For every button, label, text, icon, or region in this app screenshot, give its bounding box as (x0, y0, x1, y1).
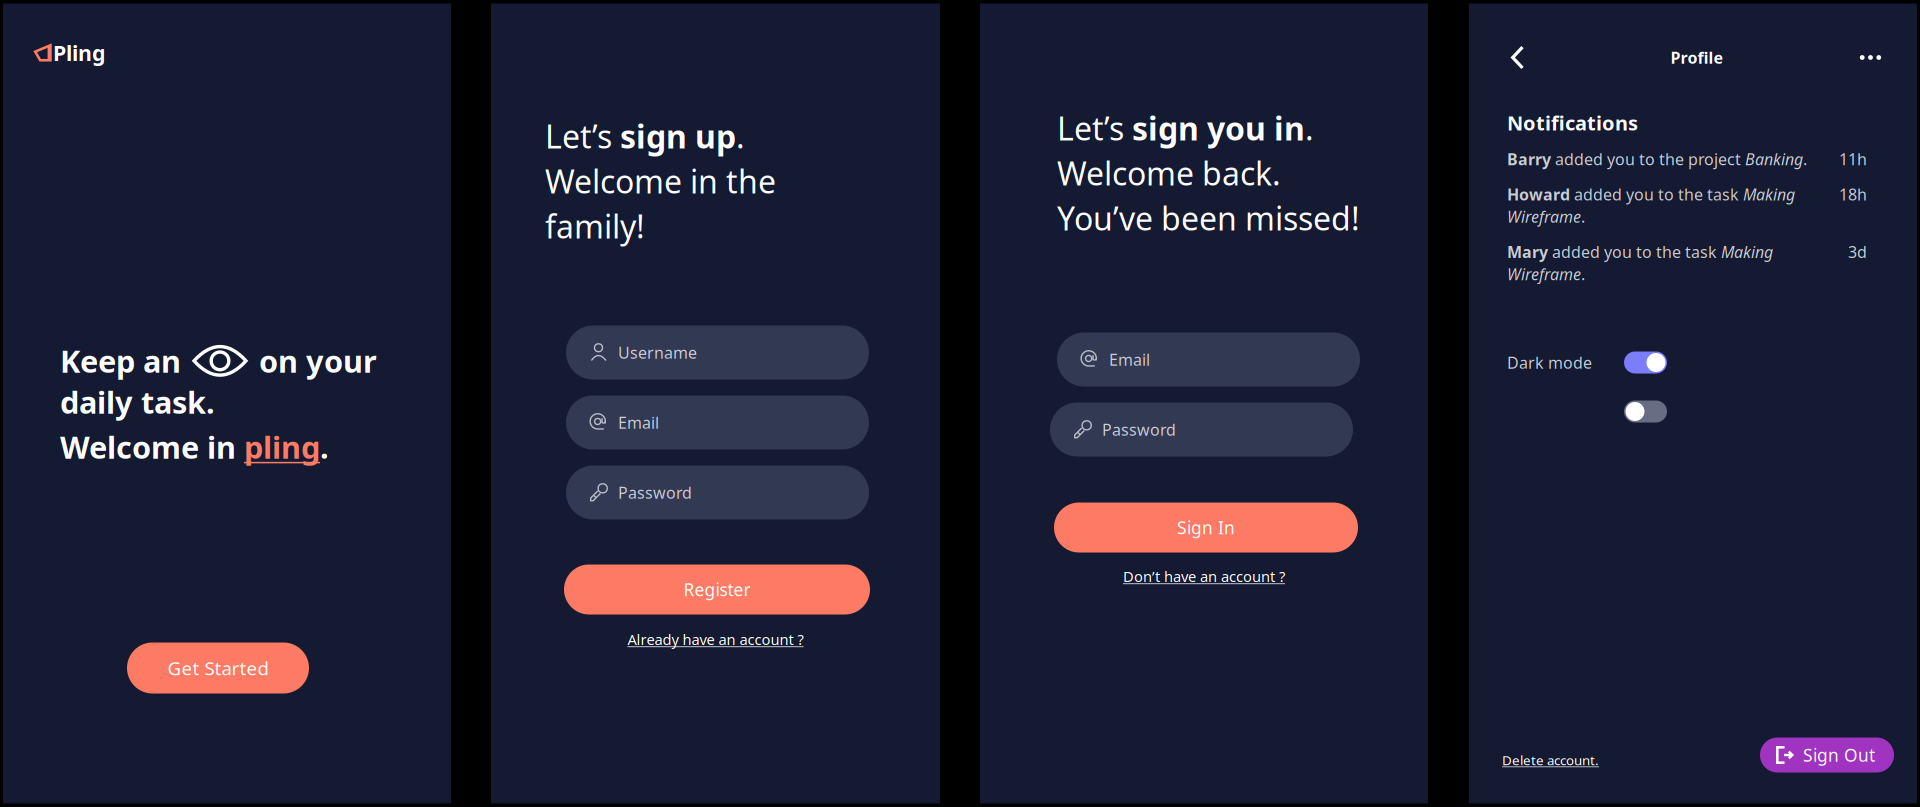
button[interactable]: Register (564, 564, 870, 614)
staticText: Welcome in (60, 426, 244, 467)
staticText: . (736, 115, 745, 157)
button[interactable]: Back (1503, 39, 1532, 75)
staticText: Email (1109, 349, 1150, 370)
staticText: sign up (620, 115, 736, 157)
button[interactable]: Already have an account ? (627, 627, 803, 651)
staticText: family! (545, 205, 645, 247)
staticText: on your (259, 340, 377, 381)
staticText: Register (683, 578, 750, 601)
staticText: Username (618, 342, 697, 363)
staticText: Welcome in the (545, 160, 776, 202)
staticText: Email (618, 412, 659, 433)
staticText: 11h (1839, 148, 1867, 170)
staticText: 3d (1848, 241, 1867, 262)
staticText: . (1305, 107, 1314, 149)
button[interactable]: Sign In (1054, 502, 1358, 552)
staticText: pling (244, 426, 320, 467)
staticText: daily task. (60, 381, 215, 422)
staticText: Profile (1670, 47, 1723, 68)
staticText: You’ve been missed! (1057, 197, 1360, 239)
button[interactable]: Don’t have an account ? (1123, 564, 1285, 588)
staticText: sign you in (1132, 107, 1305, 149)
staticText: Let’s (545, 115, 620, 157)
staticText: Password (1102, 419, 1176, 440)
button[interactable]: Sign Out (1760, 737, 1894, 772)
button[interactable]: Password (1050, 402, 1353, 456)
staticText: Barry added you to the project Banking. (1507, 148, 1807, 170)
staticText: Let’s (1057, 107, 1132, 149)
staticText: Delete account. (1502, 751, 1599, 769)
staticText: Sign In (1177, 516, 1235, 539)
button[interactable]: Email (566, 395, 869, 449)
staticText: Get Started (167, 656, 268, 680)
button[interactable]: More options (1852, 43, 1889, 72)
button[interactable]: Notifications (1624, 400, 1667, 422)
button[interactable]: Get Started (127, 642, 309, 693)
staticText: Howard added you to the task Making Wire… (1507, 184, 1795, 227)
button[interactable]: Delete account. (1502, 738, 1599, 772)
staticText: Sign Out (1803, 743, 1875, 766)
staticText: 18h (1839, 184, 1867, 205)
button[interactable]: Username (566, 325, 869, 379)
staticText: Pling (53, 38, 105, 67)
staticText: Dark mode (1507, 352, 1592, 373)
staticText: Notifications (1507, 109, 1638, 136)
staticText: Mary added you to the task Making Wirefr… (1507, 241, 1773, 285)
staticText: Welcome back. (1057, 152, 1281, 194)
staticText: Already have an account ? (627, 629, 803, 649)
staticText: Password (618, 482, 692, 503)
button[interactable]: Dark mode (1624, 351, 1667, 373)
staticText: . (320, 426, 329, 467)
button[interactable]: Password (566, 465, 869, 519)
staticText: Don’t have an account ? (1123, 566, 1285, 586)
staticText: Keep an (60, 340, 181, 381)
button[interactable]: Email (1057, 332, 1360, 386)
